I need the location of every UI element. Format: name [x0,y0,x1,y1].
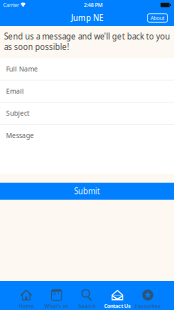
button[interactable]: About [147,14,167,22]
staticText: 2:48 PM [84,1,103,9]
staticText: Favourites [135,302,161,310]
staticText: Carrier [3,1,19,9]
staticText: Full Name [6,64,38,73]
button[interactable]: Search [72,281,102,310]
staticText: About [150,14,164,22]
button[interactable]: Favourites [133,281,163,310]
button[interactable]: Full Name [0,58,174,80]
staticText: What's on [45,302,69,310]
staticText: Jump NE [71,13,103,23]
staticText: Send us a message and we'll get back to … [4,31,170,52]
button[interactable]: Contact Us [102,281,133,310]
staticText: Home [19,302,34,310]
staticText: Submit [74,186,100,196]
button[interactable]: Subject [0,103,174,125]
staticText: Message [6,131,34,140]
button[interactable]: Email [0,80,174,103]
staticText: Email [6,87,24,96]
staticText: Subject [6,109,29,118]
staticText: 31 [53,288,61,297]
button[interactable]: Message [0,125,174,174]
button[interactable]: 31 [41,281,72,310]
button[interactable]: Submit [0,183,174,200]
staticText: Contact Us [104,302,131,310]
staticText: Search [78,302,95,310]
button[interactable]: Home [11,281,41,310]
